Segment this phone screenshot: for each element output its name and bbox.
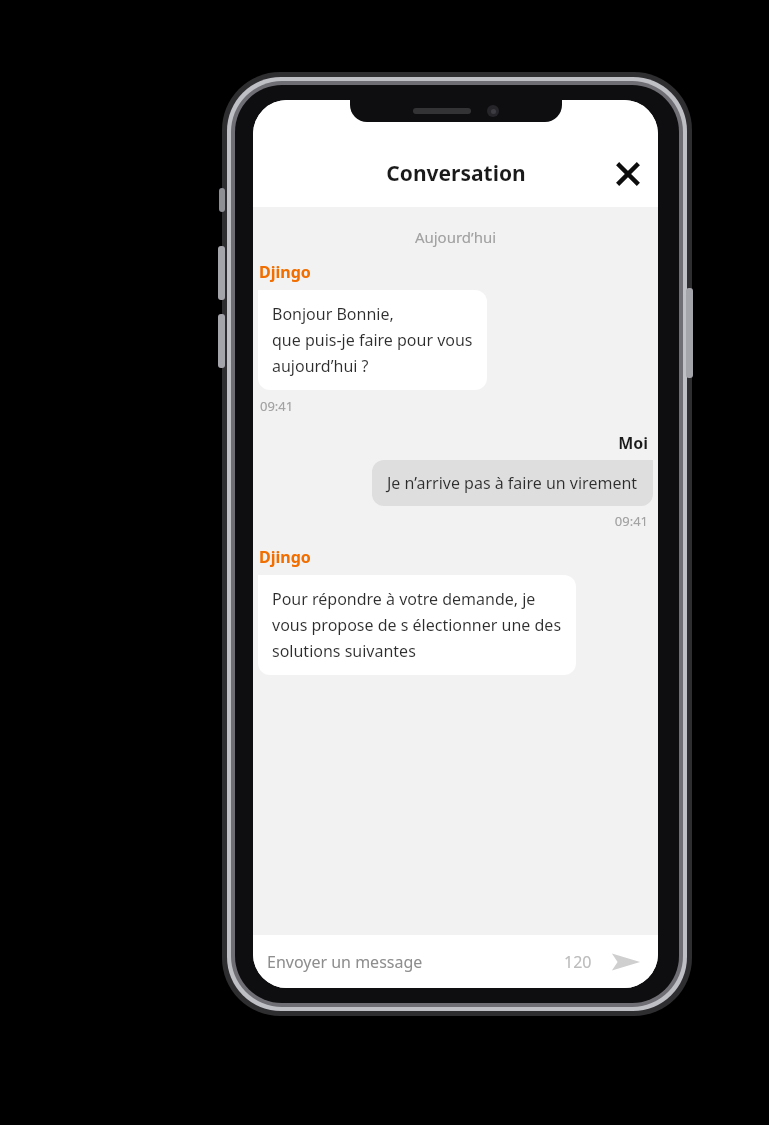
staticText: Djingo [259,546,311,568]
button[interactable]: Fermer [604,150,652,198]
staticText: Envoyer un message [267,951,423,973]
staticText: vous propose de s électionner une des [272,614,562,636]
staticText: Moi [253,432,648,454]
staticText: que puis-je faire pour vous [272,329,473,351]
staticText: Je n’arrive pas à faire un virement [387,472,638,494]
staticText: 09:41 [253,512,648,530]
staticText: Bonjour Bonnie, [272,303,394,325]
staticText: Pour répondre à votre demande, je [272,588,536,610]
button[interactable]: Envoyer [606,942,646,982]
staticText: aujourd’hui ? [272,355,369,377]
button[interactable]: Envoyer un message [253,935,658,988]
button[interactable]: Bonjour Bonnie, [258,290,487,390]
button[interactable]: Je n’arrive pas à faire un virement [372,460,653,506]
button[interactable]: Pour répondre à votre demande, je [258,575,576,675]
staticText: Conversation [386,159,526,188]
staticText: solutions suivantes [272,640,416,662]
staticText: Aujourd’hui [253,227,658,247]
staticText: 120 [564,951,592,973]
staticText: 09:41 [260,397,294,415]
staticText: Djingo [259,261,311,283]
